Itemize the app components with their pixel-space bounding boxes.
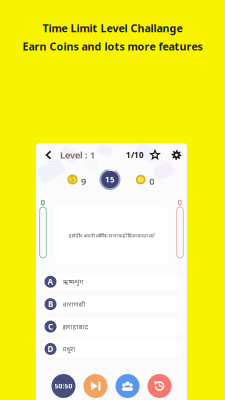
staticText: Level : 1 bbox=[60, 149, 95, 161]
staticText: 9 bbox=[81, 175, 86, 187]
staticText: इलाहाबाद bbox=[62, 322, 88, 331]
staticText: मथुरा bbox=[62, 344, 75, 353]
staticText: D bbox=[47, 344, 53, 354]
staticText: A bbox=[47, 276, 53, 287]
staticText: 1/10 bbox=[126, 150, 144, 160]
staticText: 15 bbox=[105, 174, 115, 185]
staticText: 0 bbox=[149, 175, 154, 187]
button[interactable]: Skip bbox=[83, 374, 107, 398]
staticText: $ bbox=[70, 174, 75, 185]
staticText: ऋष्यशृंग bbox=[62, 277, 83, 286]
staticText: B bbox=[48, 299, 53, 309]
staticText: हार्वर्डीन अपनी धार्मिक सभा कहाँ किया कर… bbox=[68, 232, 154, 239]
button[interactable]: A bbox=[41, 273, 182, 290]
button[interactable]: Fifty fifty bbox=[51, 374, 75, 398]
button[interactable]: Settings bbox=[166, 144, 187, 166]
staticText: C bbox=[48, 321, 53, 332]
staticText: Earn Coins and lots more features bbox=[22, 39, 202, 53]
staticText: 0 bbox=[40, 197, 45, 208]
staticText: वाराणसी bbox=[62, 300, 85, 309]
staticText: 50:50 bbox=[54, 382, 72, 390]
button[interactable]: Restart bbox=[147, 374, 171, 398]
staticText: 0 bbox=[177, 197, 182, 208]
button[interactable]: Audience poll bbox=[115, 374, 139, 398]
button[interactable]: Back bbox=[37, 144, 60, 166]
button[interactable]: D bbox=[41, 340, 182, 358]
button[interactable]: Favourite bbox=[144, 144, 166, 166]
staticText: Time Limit Level Challange bbox=[42, 21, 182, 35]
button[interactable]: B bbox=[41, 295, 182, 313]
button[interactable]: C bbox=[41, 318, 182, 335]
